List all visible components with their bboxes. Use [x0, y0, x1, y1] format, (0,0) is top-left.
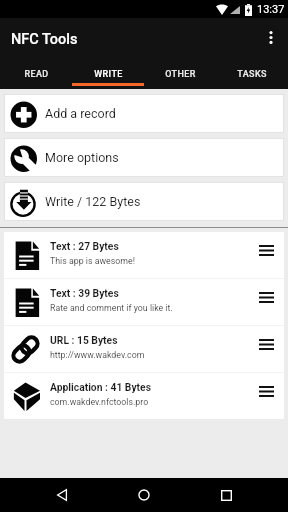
- staticText: Rate and comment if you like it.: [50, 303, 173, 313]
- button[interactable]: Home: [124, 478, 164, 512]
- staticText: Application : 41 Bytes: [50, 381, 151, 393]
- button[interactable]: Reorder: [248, 373, 284, 419]
- button[interactable]: READ: [0, 56, 72, 89]
- staticText: READ: [24, 69, 49, 80]
- button[interactable]: Add a record: [4, 94, 284, 133]
- staticText: OTHER: [165, 69, 196, 80]
- staticText: Text : 27 Bytes: [50, 240, 119, 252]
- staticText: TASKS: [237, 69, 267, 80]
- staticText: Text : 39 Bytes: [50, 287, 119, 299]
- button[interactable]: Back: [42, 478, 82, 512]
- staticText: This app is awesome!: [50, 256, 135, 266]
- button[interactable]: Reorder: [248, 326, 284, 372]
- button[interactable]: Reorder: [248, 279, 284, 325]
- staticText: 13:37: [257, 3, 285, 16]
- button[interactable]: Text : 27 Bytes: [4, 232, 284, 278]
- staticText: http://www.wakdev.com: [50, 350, 145, 360]
- button[interactable]: Write / 122 Bytes: [4, 182, 284, 221]
- staticText: URL : 15 Bytes: [50, 334, 118, 346]
- staticText: com.wakdev.nfctools.pro: [50, 397, 149, 407]
- staticText: More options: [45, 150, 119, 165]
- button[interactable]: More options: [4, 138, 284, 177]
- staticText: Add a record: [45, 106, 116, 121]
- button[interactable]: URL : 15 Bytes: [4, 326, 284, 372]
- button[interactable]: WRITE: [72, 56, 144, 89]
- staticText: NFC Tools: [11, 31, 78, 48]
- button[interactable]: More options: [254, 18, 288, 56]
- button[interactable]: Reorder: [248, 232, 284, 278]
- staticText: Write / 122 Bytes: [45, 194, 141, 209]
- button[interactable]: TASKS: [216, 56, 288, 89]
- button[interactable]: Recents: [206, 478, 246, 512]
- button[interactable]: Text : 39 Bytes: [4, 279, 284, 325]
- button[interactable]: Application : 41 Bytes: [4, 373, 284, 419]
- button[interactable]: OTHER: [144, 56, 216, 89]
- staticText: WRITE: [94, 69, 123, 80]
